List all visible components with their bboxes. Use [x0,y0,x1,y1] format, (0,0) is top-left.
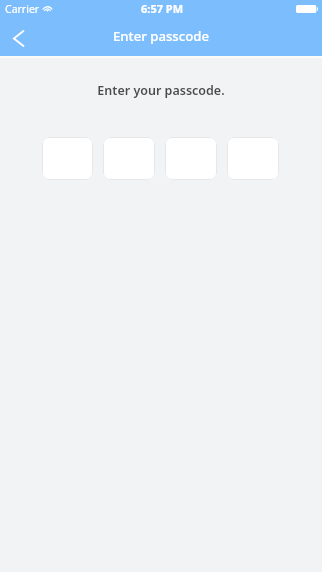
staticText: Enter your passcode. [0,82,322,99]
staticText: 6:57 PM [141,1,184,16]
button[interactable]: Back [0,20,37,56]
button[interactable]: Passcode digit [42,137,93,180]
button[interactable]: Passcode digit [227,137,279,180]
button[interactable]: Passcode digit [165,137,217,180]
staticText: Carrier [5,2,40,16]
staticText: Enter passcode [113,27,210,45]
button[interactable]: Passcode digit [103,137,155,180]
